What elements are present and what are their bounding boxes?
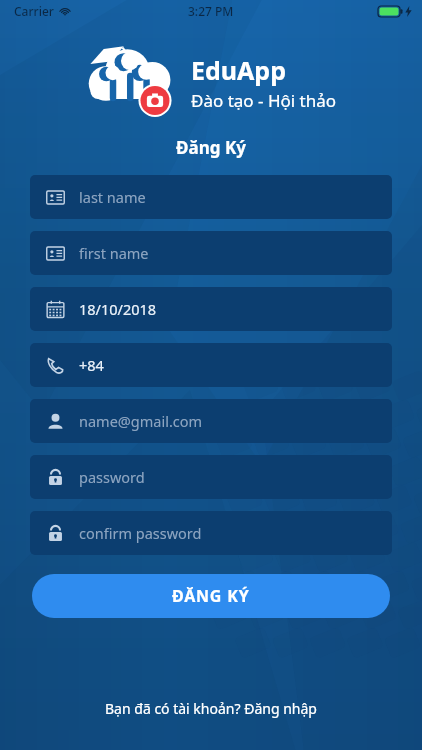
staticText: Đăng Ký	[0, 136, 422, 159]
staticText: 3:27 PM	[188, 3, 234, 19]
button[interactable]: Bạn đã có tài khoản? Đăng nhập	[0, 691, 422, 726]
button[interactable]: first name	[30, 231, 392, 275]
staticText: ĐĂNG KÝ	[172, 585, 250, 607]
staticText: password	[79, 467, 145, 487]
staticText: name@gmail.com	[79, 411, 203, 431]
staticText: +84	[79, 355, 104, 375]
staticText: first name	[79, 243, 149, 263]
staticText: 18/10/2018	[79, 299, 157, 319]
button[interactable]: name@gmail.com	[30, 399, 392, 443]
staticText: Đào tạo - Hội thảo	[191, 89, 337, 112]
button[interactable]: ĐĂNG KÝ	[32, 574, 390, 618]
staticText: EduApp	[191, 53, 286, 87]
button[interactable]: password	[30, 455, 392, 499]
button[interactable]: last name	[30, 175, 392, 219]
staticText: Carrier	[14, 3, 54, 19]
staticText: confirm password	[79, 523, 202, 543]
button[interactable]: confirm password	[30, 511, 392, 555]
staticText: last name	[79, 187, 146, 207]
staticText: Bạn đã có tài khoản? Đăng nhập	[105, 699, 317, 718]
button[interactable]: 18/10/2018	[30, 287, 392, 331]
button[interactable]: +84	[30, 343, 392, 387]
